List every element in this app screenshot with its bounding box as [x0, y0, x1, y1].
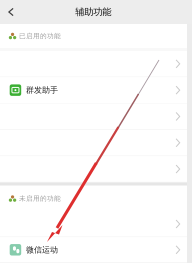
- staticText: 微信运动: [26, 245, 58, 255]
- button[interactable]: [0, 130, 192, 156]
- button[interactable]: [0, 51, 192, 77]
- button[interactable]: 群发助手: [0, 77, 192, 104]
- button[interactable]: [0, 104, 192, 130]
- button[interactable]: 微信运动: [0, 237, 192, 263]
- button[interactable]: [0, 211, 192, 237]
- button[interactable]: [0, 156, 192, 182]
- staticText: 群发助手: [26, 85, 58, 95]
- button[interactable]: Back: [0, 0, 22, 24]
- staticText: 已启用的功能: [19, 32, 61, 40]
- staticText: 辅助功能: [75, 6, 111, 18]
- staticText: 未启用的功能: [19, 194, 61, 203]
